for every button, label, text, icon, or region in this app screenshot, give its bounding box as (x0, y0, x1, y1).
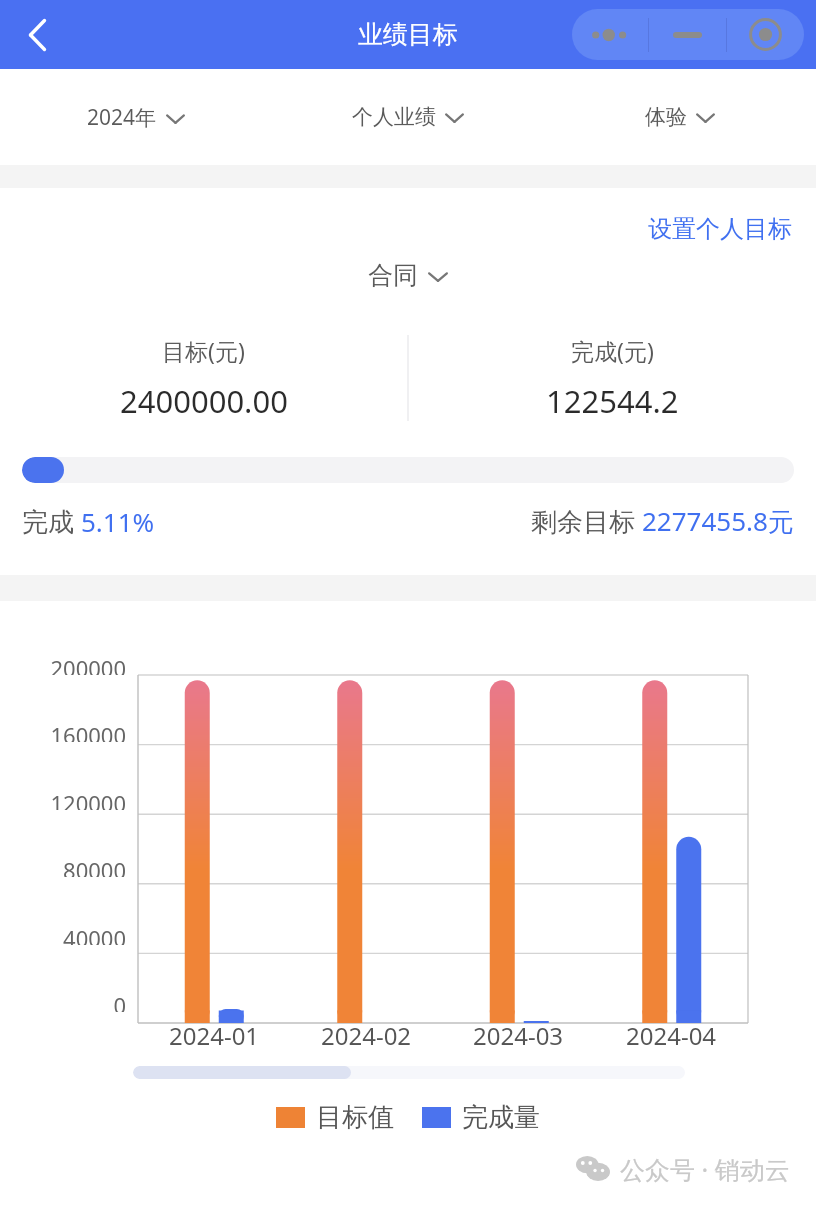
staticText: 个人业绩 (352, 104, 436, 130)
staticText: 体验 (645, 104, 687, 130)
button[interactable]: 合同 (362, 254, 454, 297)
button[interactable]: 2024年 (81, 95, 191, 140)
staticText: 122544.2 (546, 380, 679, 422)
staticText: 完成(元) (571, 335, 654, 366)
button[interactable]: 设置个人目标 (648, 214, 816, 244)
button[interactable]: Close (727, 9, 804, 60)
button[interactable]: 完成量 (414, 1097, 548, 1138)
staticText: 2024-01 (169, 1019, 260, 1052)
button[interactable]: 个人业绩 (346, 96, 470, 138)
staticText: 0 (113, 990, 126, 1012)
staticText: 2024-03 (473, 1019, 564, 1052)
button[interactable]: More (572, 9, 648, 60)
staticText: 2277455.8元 (642, 503, 794, 539)
staticText: 2400000.00 (120, 380, 288, 422)
button[interactable]: Minimize (649, 9, 726, 60)
button[interactable]: 体验 (639, 96, 721, 138)
staticText: 业绩目标 (358, 19, 458, 50)
staticText: 160000 (50, 720, 126, 742)
staticText: 公众号 · 销动云 (620, 1152, 790, 1186)
button[interactable]: Back (10, 8, 64, 62)
staticText: 目标值 (316, 1101, 394, 1134)
staticText: 剩余目标 (531, 503, 642, 539)
staticText: 5.11% (81, 504, 155, 539)
staticText: 完成 (22, 503, 81, 539)
staticText: 合同 (368, 260, 418, 291)
staticText: 2024-04 (626, 1019, 717, 1052)
staticText: 120000 (50, 788, 126, 810)
button[interactable]: 目标值 (268, 1097, 402, 1138)
staticText: 40000 (63, 923, 126, 945)
staticText: 2024年 (87, 103, 157, 132)
staticText: 目标(元) (162, 335, 245, 366)
staticText: 80000 (63, 855, 126, 877)
staticText: 200000 (50, 653, 126, 675)
staticText: 完成量 (462, 1101, 540, 1134)
staticText: 2024-02 (321, 1019, 412, 1052)
